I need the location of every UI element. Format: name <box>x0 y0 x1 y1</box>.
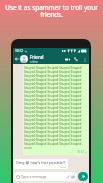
staticText: online <box>30 60 39 64</box>
staticText: 10:12 <box>15 49 24 53</box>
button[interactable]: Contact photo <box>20 55 28 63</box>
staticText: more <box>24 146 32 150</box>
button[interactable]: Record voice message <box>78 172 88 181</box>
staticText: Omg 😂 how's that possible!? <box>16 160 66 165</box>
button[interactable]: More options <box>82 57 87 62</box>
staticText: Use it as spammer to troll your friends. <box>2 3 101 19</box>
button[interactable]: Omg 😂 how's that possible!? <box>14 159 68 169</box>
button[interactable]: Attach <box>66 175 70 179</box>
button[interactable]: Voice call <box>73 56 79 62</box>
staticText: 10:12 <box>16 165 66 168</box>
button[interactable]: Type a message <box>16 172 75 181</box>
staticText: Type a message <box>21 174 66 179</box>
staticText: 10:12 <box>77 150 84 154</box>
button[interactable]: Camera <box>71 175 75 179</box>
staticText: Friend <box>30 54 44 60</box>
button[interactable]: Back <box>14 56 20 62</box>
staticText: Stupid Stupid Stupid Stupid Stupid Stupi… <box>24 65 87 146</box>
button[interactable]: Stupid Stupid Stupid Stupid Stupid Stupi… <box>23 64 88 155</box>
button[interactable]: Video call <box>64 56 70 62</box>
